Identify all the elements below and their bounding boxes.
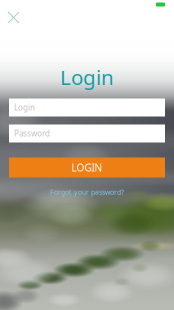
staticText: Forgot your password? bbox=[50, 187, 124, 197]
staticText: Login bbox=[14, 102, 35, 113]
staticText: Login bbox=[60, 63, 114, 91]
button[interactable]: Forgot your password? bbox=[0, 186, 174, 198]
button[interactable]: LOGIN bbox=[9, 157, 165, 177]
staticText: LOGIN bbox=[71, 161, 102, 174]
staticText: Password bbox=[14, 128, 50, 139]
button[interactable]: Close bbox=[4, 8, 23, 27]
